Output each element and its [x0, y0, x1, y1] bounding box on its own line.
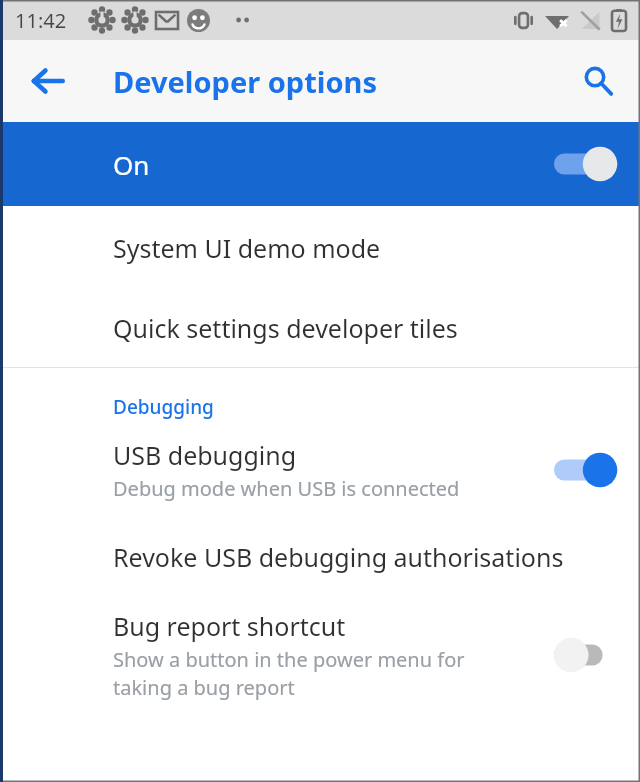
button[interactable]: Quick settings developer tiles: [0, 289, 640, 367]
staticText: USB debugging: [113, 438, 297, 472]
staticText: System UI demo mode: [113, 231, 381, 265]
staticText: 11:42: [15, 7, 67, 34]
staticText: Bug report shortcut: [113, 609, 346, 643]
staticText: Quick settings developer tiles: [113, 311, 458, 345]
button[interactable]: Search: [570, 53, 626, 109]
button[interactable]: System UI demo mode: [0, 206, 640, 289]
staticText: Debugging: [113, 394, 214, 420]
button[interactable]: On: [0, 122, 640, 206]
staticText: Revoke USB debugging authorisations: [113, 540, 564, 574]
button[interactable]: USB debugging: [0, 426, 640, 514]
staticText: Show a button in the power menu for taki…: [113, 646, 465, 701]
button[interactable]: Back: [20, 53, 76, 109]
staticText: Debug mode when USB is connected: [113, 475, 460, 502]
button[interactable]: Revoke USB debugging authorisations: [0, 514, 640, 600]
staticText: Developer options: [113, 62, 377, 101]
staticText: On: [113, 147, 150, 182]
button[interactable]: Bug report shortcut: [0, 600, 640, 710]
